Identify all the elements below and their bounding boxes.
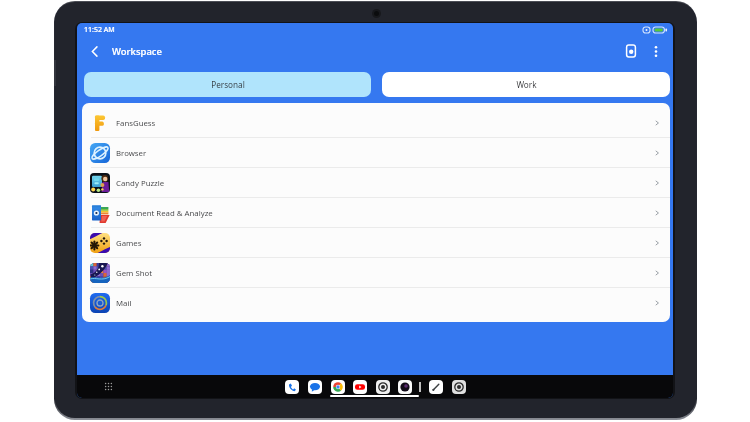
button[interactable]: Chrome: [331, 380, 345, 394]
button[interactable]: Personal: [84, 72, 371, 97]
button[interactable]: Candy Puzzle: [82, 168, 670, 198]
staticText: Gem Shot: [116, 268, 153, 279]
button[interactable]: Document Read & Analyze: [82, 198, 670, 228]
staticText: Work: [516, 79, 537, 90]
button[interactable]: Notes: [429, 380, 443, 394]
button[interactable]: Camera: [376, 380, 390, 394]
button[interactable]: All apps: [104, 382, 113, 391]
staticText: Games: [116, 238, 142, 249]
button[interactable]: YouTube: [353, 380, 367, 394]
button[interactable]: FansGuess: [82, 108, 670, 138]
button[interactable]: More options: [646, 41, 666, 61]
staticText: FansGuess: [116, 118, 156, 129]
staticText: Document Read & Analyze: [116, 208, 213, 219]
staticText: Workspace: [112, 45, 162, 58]
button[interactable]: Phone: [285, 380, 299, 394]
button[interactable]: Browser: [82, 138, 670, 168]
button[interactable]: Messages: [308, 380, 322, 394]
button[interactable]: Settings: [452, 380, 466, 394]
button[interactable]: Mail: [82, 288, 670, 318]
button[interactable]: Games: [82, 228, 670, 258]
staticText: Personal: [211, 79, 245, 90]
button[interactable]: Gem Shot: [82, 258, 670, 288]
staticText: Mail: [116, 298, 132, 309]
staticText: 11:52 AM: [84, 25, 115, 35]
button[interactable]: Photos: [398, 380, 412, 394]
button[interactable]: Work: [382, 72, 670, 97]
staticText: Browser: [116, 148, 147, 159]
staticText: Candy Puzzle: [116, 178, 165, 189]
button[interactable]: Scan document: [621, 41, 641, 61]
button[interactable]: Back: [84, 41, 104, 61]
